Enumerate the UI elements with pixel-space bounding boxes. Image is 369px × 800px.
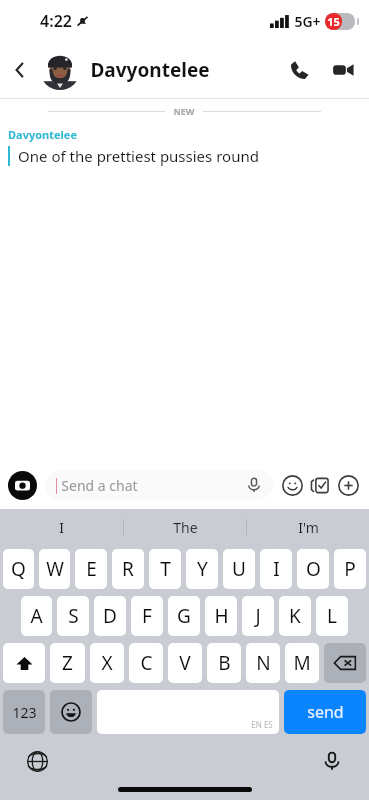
staticText: D [103,603,117,629]
button[interactable]: The [124,509,246,545]
button[interactable]: D [94,596,126,636]
staticText: W [46,556,64,582]
staticText: A [30,603,43,629]
button[interactable]: Backspace [324,643,366,683]
staticText: The [173,518,198,537]
button[interactable]: P [334,549,366,589]
staticText: O [306,556,321,582]
staticText: I'm [298,518,319,537]
staticText: 123 [12,703,37,722]
staticText: NEW [173,105,195,117]
button[interactable]: N [246,643,280,683]
staticText: T [160,556,171,582]
button[interactable]: 123 [3,690,45,734]
button[interactable]: Emoji keyboard [50,690,92,734]
staticText: X [101,650,113,676]
staticText: Davyontelee [90,57,210,83]
button[interactable]: V [168,643,202,683]
button[interactable]: B [207,643,241,683]
button[interactable]: U [223,549,255,589]
button[interactable]: H [205,596,237,636]
button[interactable]: X [90,643,124,683]
button[interactable]: M [285,643,319,683]
staticText: L [327,603,337,629]
button[interactable]: E [75,549,107,589]
staticText: S [68,603,79,629]
button[interactable]: Send a chat [45,470,273,500]
button[interactable]: More [335,472,361,498]
staticText: V [179,650,191,676]
staticText: I [273,556,280,582]
staticText: B [218,650,231,676]
staticText: J [255,603,261,629]
staticText: G [177,603,191,629]
staticText: Send a chat [61,476,138,495]
button[interactable]: Call [277,48,321,92]
button[interactable]: Dictate [317,746,347,776]
button[interactable]: A [21,596,52,636]
button[interactable]: R [112,549,144,589]
staticText: P [344,556,356,582]
button[interactable]: Shift [3,643,45,683]
button[interactable]: J [242,596,274,636]
button[interactable]: Q [3,549,34,589]
staticText: C [140,650,153,676]
staticText: 4:22 [40,10,72,32]
staticText: Z [62,650,73,676]
staticText: One of the prettiest pussies round [18,146,259,166]
staticText: K [289,603,301,629]
button[interactable]: O [297,549,329,589]
button[interactable]: Change keyboard [22,746,52,776]
button[interactable]: Y [186,549,218,589]
staticText: U [232,556,246,582]
staticText: R [122,556,134,582]
button[interactable]: Emoji [279,472,305,498]
button[interactable]: G [168,596,200,636]
staticText: F [142,603,152,629]
staticText: N [256,650,271,676]
staticText: I [59,518,64,537]
staticText: H [214,603,229,629]
staticText: 5G+ [294,12,321,31]
button[interactable]: I'm [247,509,369,545]
button[interactable]: Back [0,42,40,98]
staticText: Y [197,556,208,582]
button[interactable]: Voice [243,474,265,496]
button[interactable]: I [260,549,292,589]
button[interactable]: T [149,549,181,589]
staticText: 15 [327,14,340,29]
staticText: M [293,650,311,676]
staticText: EN ES [251,719,273,730]
button[interactable]: send [284,690,366,734]
staticText: Davyontelee [8,127,77,142]
button[interactable]: Stickers [307,472,333,498]
staticText: Q [11,556,26,582]
button[interactable]: Space [97,690,279,734]
staticText: E [86,556,97,582]
button[interactable]: Camera [8,471,37,500]
button[interactable]: C [129,643,163,683]
button[interactable]: Video call [321,48,365,92]
staticText: send [307,701,344,723]
button[interactable]: L [316,596,348,636]
button[interactable]: F [131,596,163,636]
button[interactable]: I [0,509,123,545]
button[interactable]: W [39,549,70,589]
button[interactable]: Z [50,643,85,683]
button[interactable]: K [279,596,311,636]
button[interactable]: S [57,596,89,636]
button[interactable]: Profile [40,50,80,90]
